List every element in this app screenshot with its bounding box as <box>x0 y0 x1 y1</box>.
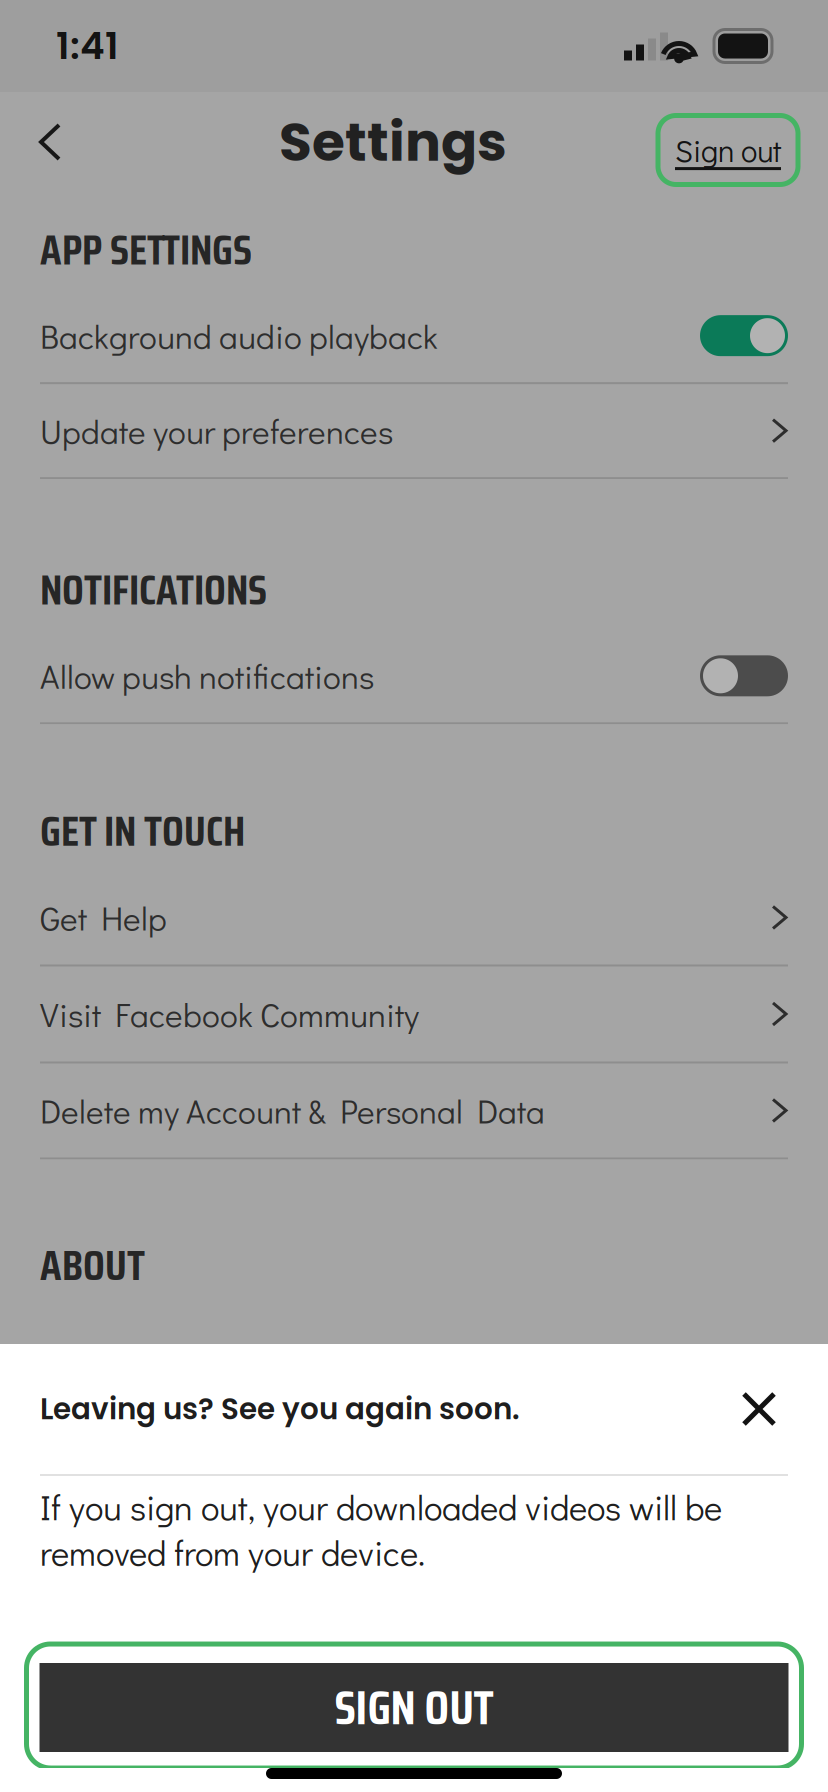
staticText: Get Help <box>40 896 167 939</box>
button[interactable]: Visit Facebook Community <box>0 966 828 1063</box>
staticText: Leaving us? See you again soon. <box>40 1388 520 1430</box>
staticText: ABOUT <box>40 1231 145 1299</box>
staticText: Background audio playback <box>40 314 438 357</box>
staticText: NOTIFICATIONS <box>40 556 267 623</box>
button[interactable]: Sign out <box>658 99 798 184</box>
button[interactable]: Allow push notifications <box>0 629 828 724</box>
button[interactable]: SIGN OUT <box>26 1644 801 1768</box>
button[interactable]: Get Help <box>0 870 828 966</box>
staticText: Sign out <box>675 130 781 170</box>
staticText: GET IN TOUCH <box>40 797 245 864</box>
staticText: SIGN OUT <box>334 1670 493 1745</box>
staticText: Settings <box>279 105 507 179</box>
button[interactable]: Back <box>0 92 100 192</box>
button[interactable]: Close <box>730 1380 788 1438</box>
button[interactable]: Delete my Account & Personal Data <box>0 1063 828 1159</box>
staticText: Allow push notifications <box>40 654 374 698</box>
button[interactable]: Update your preferences <box>0 384 828 479</box>
staticText: Update your preferences <box>40 409 393 452</box>
staticText: Delete my Account & Personal Data <box>40 1089 545 1132</box>
staticText: 1:41 <box>56 20 119 72</box>
staticText: If you sign out, your downloaded videos … <box>40 1484 722 1575</box>
staticText: Visit Facebook Community <box>40 992 419 1036</box>
button[interactable]: Background audio playback <box>0 289 828 384</box>
staticText: APP SETTINGS <box>40 216 252 283</box>
